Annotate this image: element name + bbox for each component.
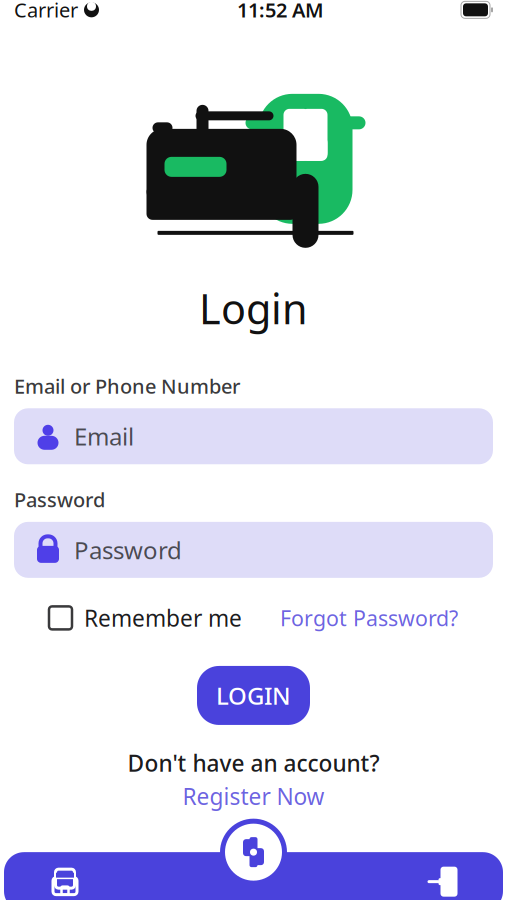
button[interactable]: LOGIN [197,666,310,725]
button[interactable]: Home [20,853,110,900]
button[interactable]: Password [14,522,493,578]
staticText: Password [74,534,182,566]
staticText: Don't have an account? [127,748,379,778]
button[interactable]: Forgot Password? [280,598,458,638]
staticText: Forgot Password? [280,604,458,632]
staticText: 11:52 AM [237,0,324,23]
staticText: Login [199,281,308,336]
button[interactable]: Log out [397,853,487,900]
staticText: Email or Phone Number [14,373,240,399]
button[interactable]: Remember me [49,597,242,639]
staticText: Remember me [84,603,242,633]
button[interactable]: Email [14,408,493,464]
staticText: Email [74,420,134,452]
staticText: Register Now [182,781,324,811]
staticText: LOGIN [216,679,291,711]
staticText: Password [14,486,105,513]
staticText: Carrier [14,0,78,23]
button[interactable]: Explore [220,819,286,885]
button[interactable]: Register Now [182,781,324,811]
